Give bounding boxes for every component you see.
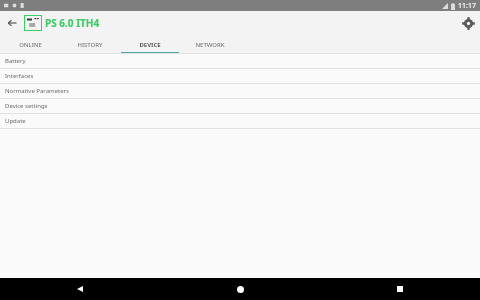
staticText: PS 6.0 ITH4	[45, 16, 100, 30]
staticText: Interfaces	[5, 72, 34, 80]
staticText: NETWORK	[195, 41, 225, 49]
staticText: 11:17	[458, 1, 476, 11]
button[interactable]: Interfaces	[0, 69, 480, 84]
button[interactable]: Device settings	[0, 99, 480, 114]
button[interactable]: Normative Parameters	[0, 84, 480, 99]
staticText: Update	[5, 117, 26, 125]
button[interactable]: Battery	[0, 54, 480, 69]
button[interactable]: Home	[160, 278, 320, 300]
button[interactable]: Settings	[456, 11, 480, 35]
button[interactable]: Update	[0, 114, 480, 129]
button[interactable]: NETWORK	[180, 35, 240, 54]
button[interactable]: Back	[0, 11, 24, 35]
staticText: DEVICE	[139, 41, 161, 49]
staticText: Battery	[5, 57, 26, 65]
staticText: Normative Parameters	[5, 87, 69, 95]
button[interactable]: ONLINE	[0, 35, 60, 54]
staticText: ONLINE	[19, 41, 42, 49]
button[interactable]: Recent apps	[320, 278, 480, 300]
staticText: HISTORY	[77, 41, 103, 49]
button[interactable]: Back	[0, 278, 160, 300]
staticText: Device settings	[5, 102, 48, 110]
button[interactable]: DEVICE	[120, 35, 180, 54]
button[interactable]: HISTORY	[60, 35, 120, 54]
